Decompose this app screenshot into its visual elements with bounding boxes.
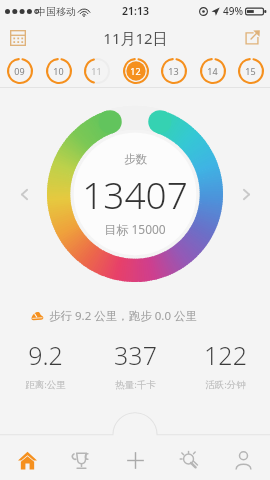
staticText: 步数 [124, 152, 147, 166]
button[interactable]: Calendar [5, 25, 31, 51]
staticText: 中国移动 [36, 5, 76, 18]
staticText: 122 [204, 338, 247, 372]
button[interactable]: 14 [197, 55, 228, 86]
button[interactable]: 09 [4, 55, 35, 86]
button[interactable]: Previous day [13, 183, 35, 205]
staticText: 15 [245, 65, 256, 77]
button[interactable]: 10 [43, 55, 74, 86]
staticText: 活跃:分钟 [205, 378, 246, 391]
staticText: 13 [168, 65, 179, 77]
button[interactable]: Achievements [54, 441, 108, 480]
staticText: 49% [223, 4, 243, 18]
staticText: 11 [91, 65, 102, 77]
staticText: 步行 9.2 公里，跑步 0.0 公里 [49, 308, 197, 324]
button[interactable]: 9.2 [0, 332, 90, 396]
staticText: 热量:千卡 [115, 378, 156, 391]
staticText: 目标 15000 [104, 221, 166, 237]
button[interactable]: 13 [158, 55, 189, 86]
button[interactable]: 15 [235, 55, 266, 86]
staticText: 9.2 [28, 338, 63, 372]
button[interactable]: Next day [235, 183, 257, 205]
staticText: 21:13 [122, 4, 149, 18]
button[interactable]: Home [0, 441, 54, 480]
staticText: 13407 [82, 169, 188, 219]
button[interactable]: 122 [180, 332, 270, 396]
button[interactable]: Share [239, 25, 265, 51]
staticText: 14 [207, 65, 218, 77]
staticText: 12 [130, 65, 141, 77]
staticText: 11月12日 [103, 28, 168, 48]
staticText: 10 [53, 65, 64, 77]
staticText: 09 [14, 65, 25, 77]
button[interactable]: 337 [90, 332, 180, 396]
button[interactable]: Discover [162, 441, 216, 480]
button[interactable]: 11 [81, 55, 112, 86]
staticText: 337 [114, 338, 157, 372]
button[interactable]: 12 [120, 55, 151, 86]
button[interactable]: Profile [216, 441, 270, 480]
staticText: 距离:公里 [25, 378, 66, 391]
button[interactable]: Add [108, 441, 162, 480]
